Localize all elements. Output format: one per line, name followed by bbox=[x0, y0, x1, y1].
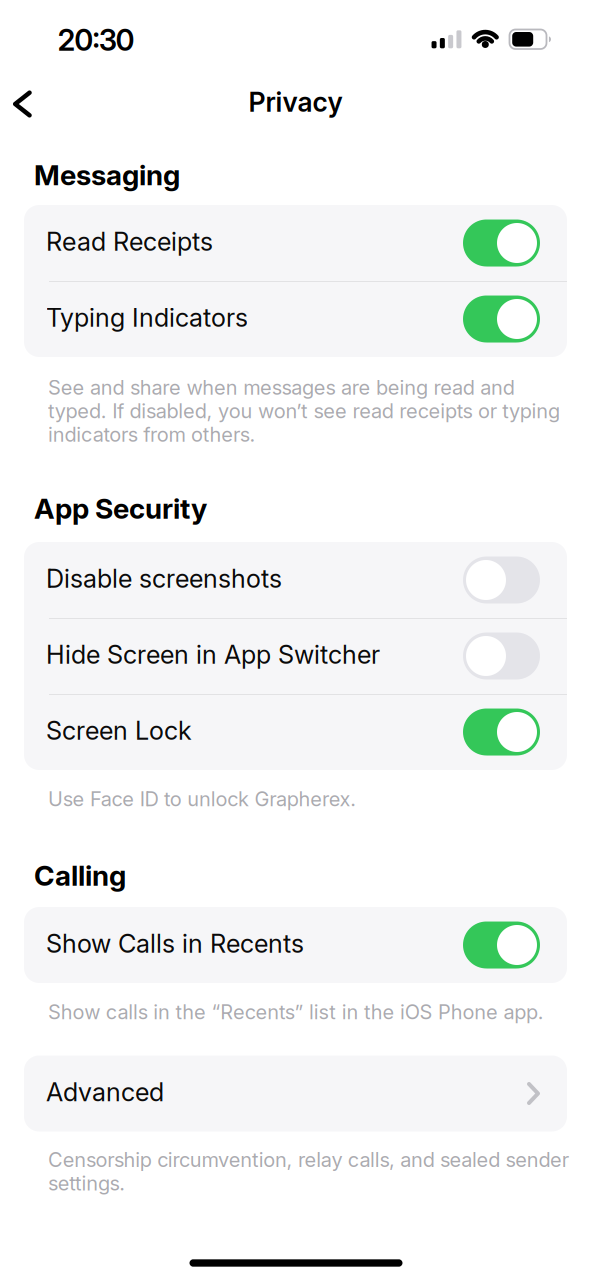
staticText: Disable screenshots bbox=[46, 564, 282, 593]
staticText: Calling bbox=[34, 859, 126, 892]
staticText: Use Face ID to unlock Grapherex. bbox=[48, 787, 356, 811]
staticText: Show Calls in Recents bbox=[46, 929, 304, 958]
staticText: See and share when messages are being re… bbox=[48, 376, 560, 446]
staticText: Show calls in the “Recents” list in the … bbox=[48, 1000, 544, 1024]
button[interactable] bbox=[463, 295, 540, 342]
button[interactable] bbox=[463, 632, 540, 679]
button[interactable] bbox=[12, 90, 33, 117]
button[interactable] bbox=[463, 219, 540, 266]
staticText: Advanced bbox=[46, 1077, 164, 1107]
staticText: App Security bbox=[34, 492, 207, 525]
button[interactable] bbox=[463, 556, 540, 603]
staticText: Messaging bbox=[34, 158, 180, 191]
staticText: Screen Lock bbox=[46, 716, 192, 745]
button[interactable] bbox=[463, 708, 540, 755]
staticText: Hide Screen in App Switcher bbox=[46, 640, 380, 669]
staticText: Censorship circumvention, relay calls, a… bbox=[48, 1148, 569, 1195]
staticText: Typing Indicators bbox=[46, 303, 248, 332]
staticText: Privacy bbox=[248, 86, 342, 118]
staticText: Read Receipts bbox=[46, 227, 213, 256]
button[interactable]: Advanced bbox=[24, 1055, 567, 1131]
button[interactable] bbox=[463, 921, 540, 968]
staticText: 20:30 bbox=[58, 23, 134, 57]
